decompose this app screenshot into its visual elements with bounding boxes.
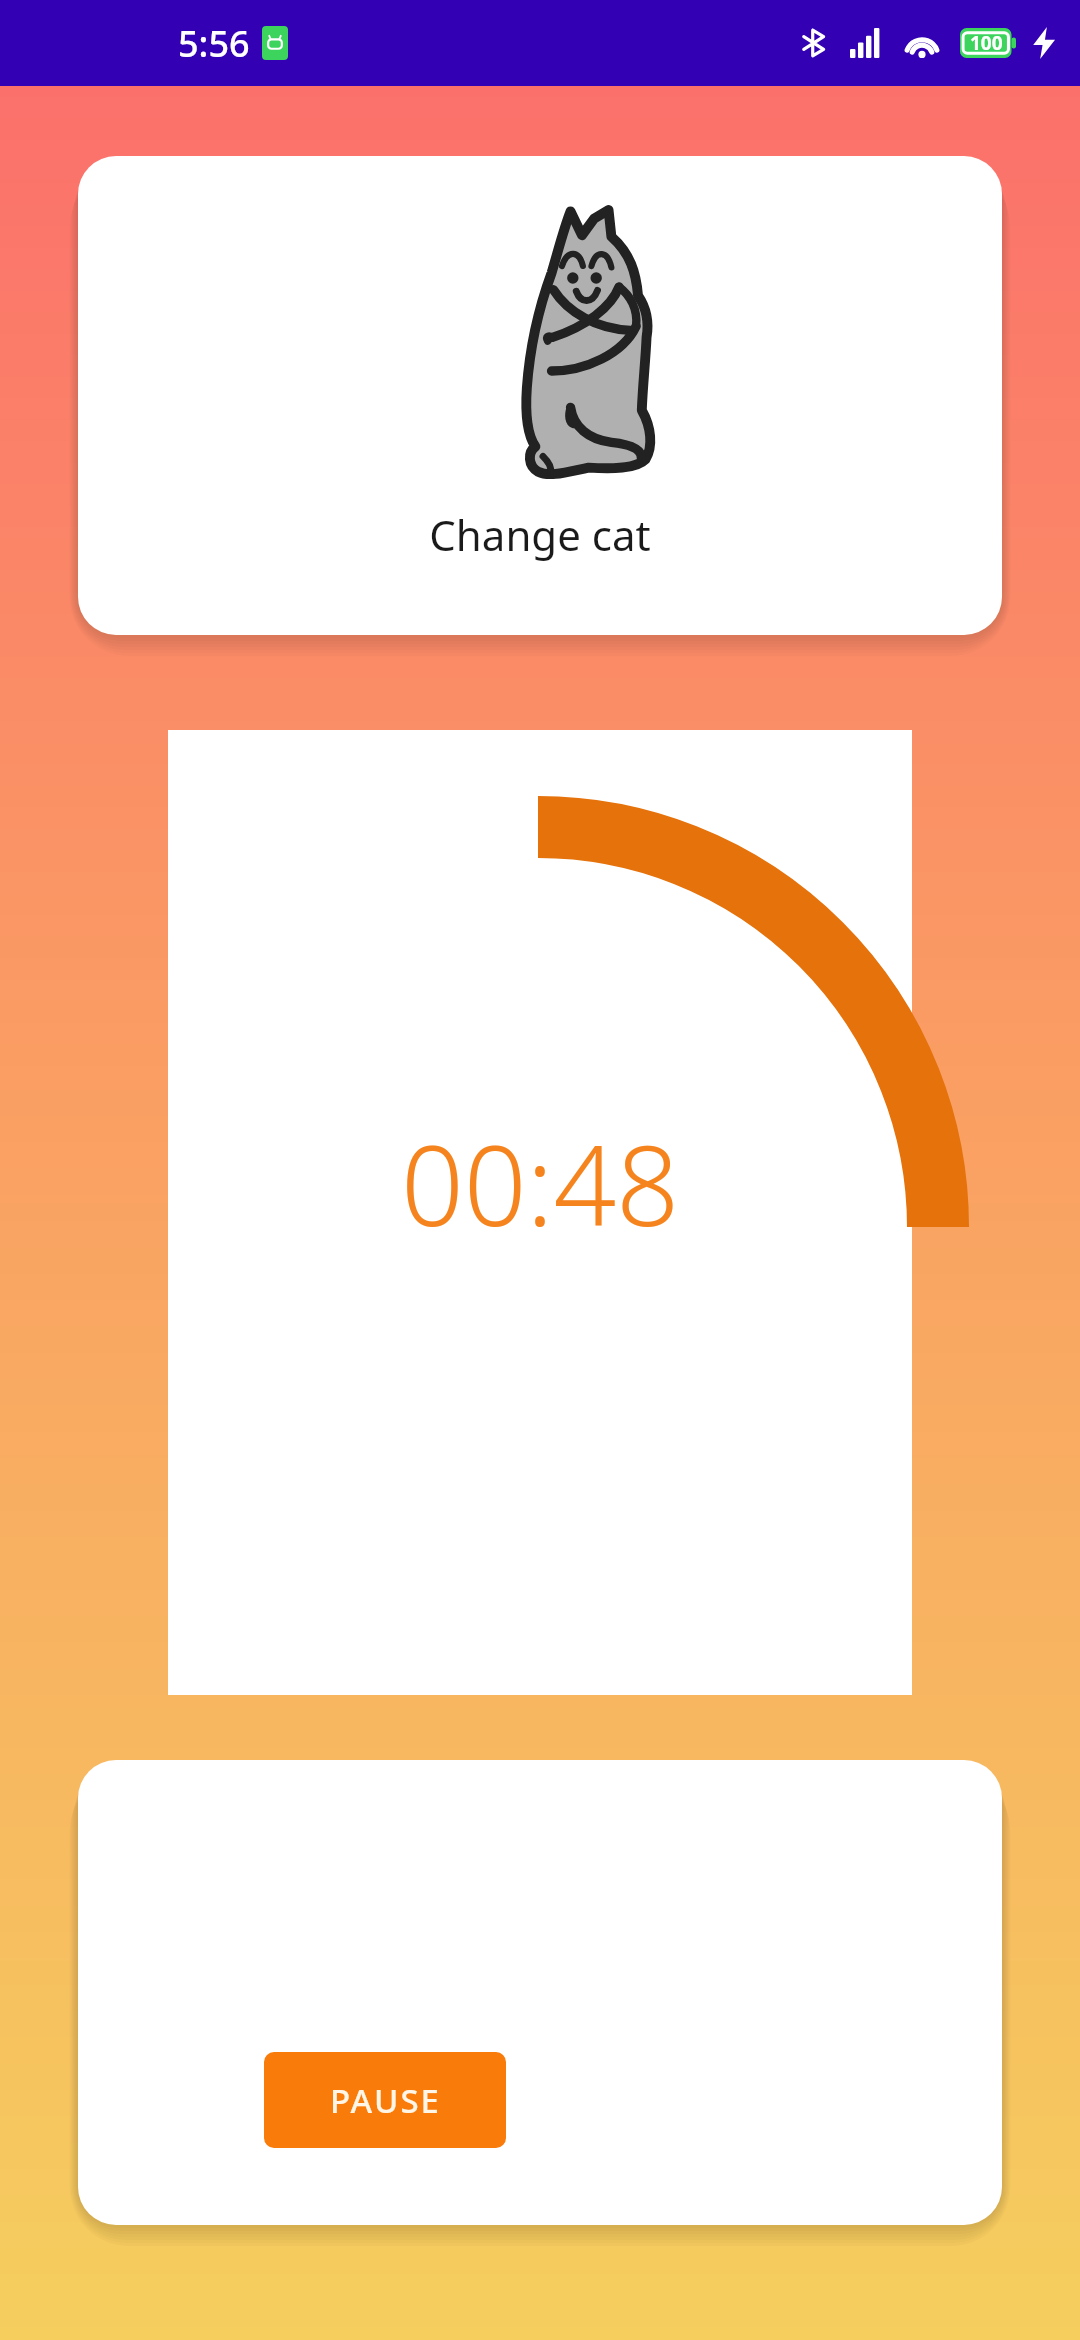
staticText: PAUSE xyxy=(330,2078,441,2123)
staticText: Change cat xyxy=(78,506,1002,563)
button[interactable]: 00:48 xyxy=(168,730,912,1695)
staticText: 100 xyxy=(970,30,1003,56)
staticText: 5:56 xyxy=(178,19,250,68)
staticText: 00:48 xyxy=(168,1108,912,1258)
button[interactable]: PAUSE xyxy=(264,2052,506,2148)
button[interactable]: Change cat xyxy=(78,156,1002,635)
